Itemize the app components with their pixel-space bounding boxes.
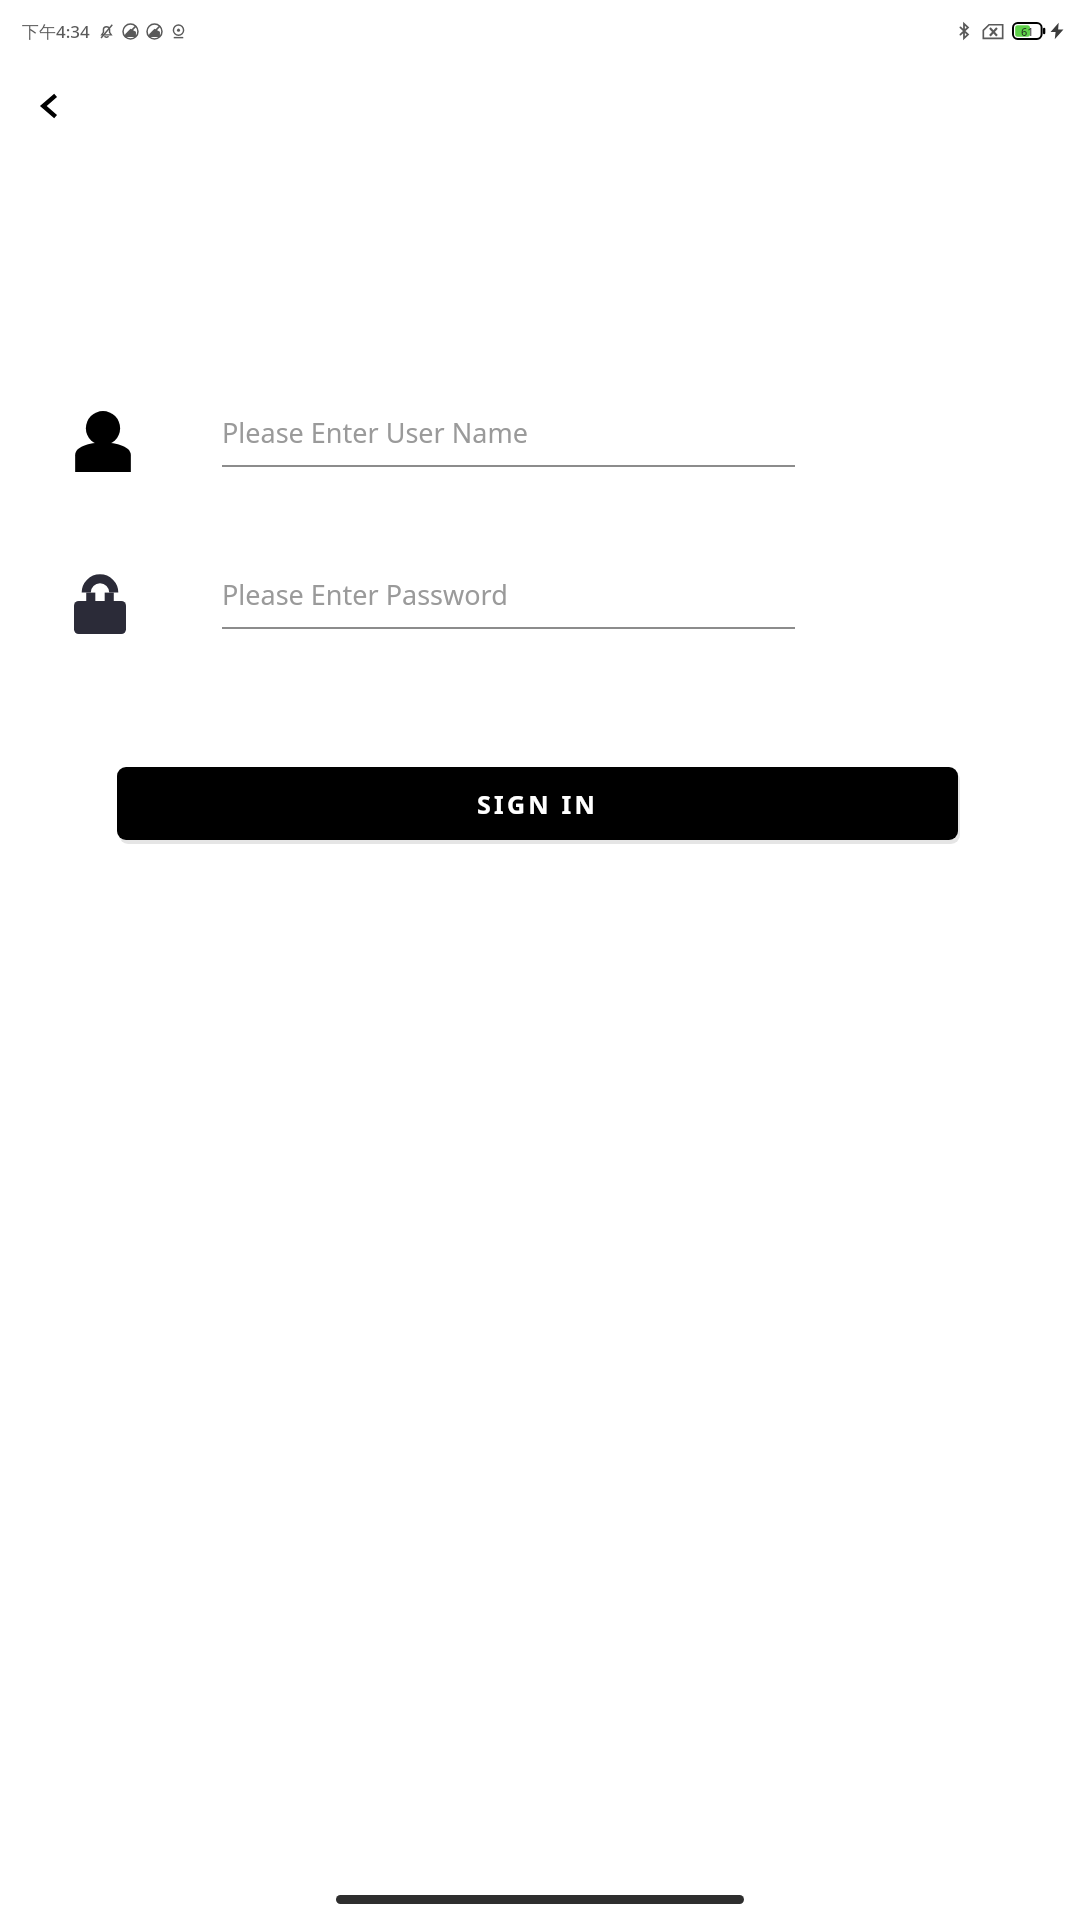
button[interactable]: Back bbox=[14, 70, 86, 142]
staticText: 61 bbox=[1021, 24, 1034, 39]
button[interactable]: Please Enter User Name bbox=[222, 414, 795, 467]
staticText: Please Enter Password bbox=[222, 576, 508, 613]
staticText: Please Enter User Name bbox=[222, 414, 528, 451]
staticText: 下午4:34 bbox=[22, 20, 90, 43]
staticText: SIGN IN bbox=[477, 787, 598, 821]
button[interactable]: Please Enter Password bbox=[222, 576, 795, 629]
button[interactable]: SIGN IN bbox=[117, 767, 958, 840]
